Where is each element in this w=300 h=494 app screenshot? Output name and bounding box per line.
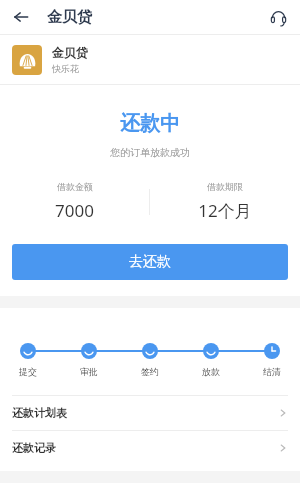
button[interactable]: Back xyxy=(6,2,36,32)
staticText: 借款金额 xyxy=(57,181,93,192)
staticText: 结清 xyxy=(263,366,281,377)
staticText: 还款记录 xyxy=(12,441,278,455)
staticText: 金贝贷 xyxy=(47,8,92,27)
staticText: 您的订单放款成功 xyxy=(0,146,300,159)
button[interactable]: 金贝贷 xyxy=(0,35,300,84)
staticText: 金贝贷 xyxy=(52,45,88,60)
button[interactable]: Customer service xyxy=(264,3,292,31)
staticText: 签约 xyxy=(141,366,159,377)
staticText: 放款 xyxy=(202,366,220,377)
staticText: 审批 xyxy=(80,366,98,377)
staticText: 去还款 xyxy=(129,253,171,271)
staticText: 12个月 xyxy=(198,199,252,222)
staticText: 提交 xyxy=(19,366,37,377)
staticText: 还款计划表 xyxy=(12,406,278,420)
button[interactable]: 去还款 xyxy=(12,244,288,280)
staticText: 还款中 xyxy=(0,111,300,136)
staticText: 快乐花 xyxy=(52,63,79,74)
staticText: 借款期限 xyxy=(207,181,243,192)
button[interactable]: 还款计划表 xyxy=(0,396,300,430)
staticText: 7000 xyxy=(55,199,94,222)
button[interactable]: 还款记录 xyxy=(0,431,300,465)
